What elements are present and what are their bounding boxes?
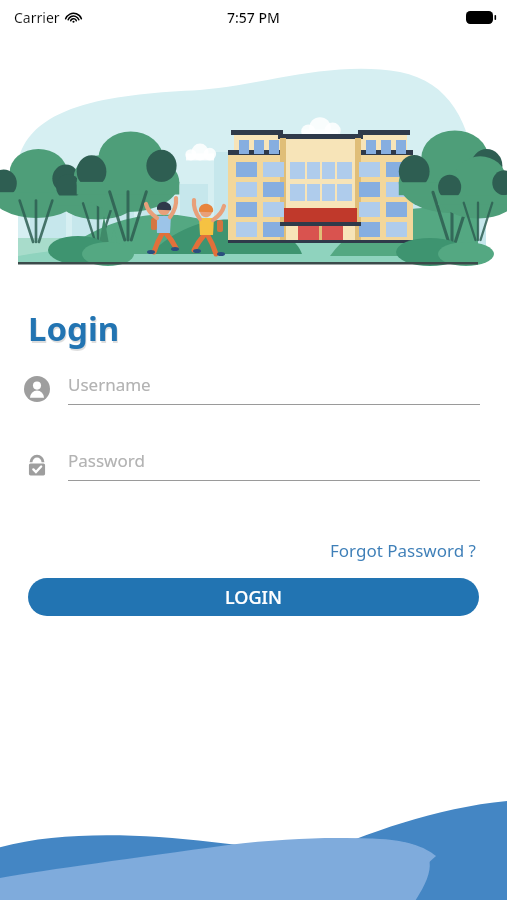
staticText: Forgot Password ? (330, 539, 476, 562)
button[interactable]: Password (24, 449, 480, 481)
staticText: Carrier (14, 8, 60, 27)
staticText: 7:57 PM (227, 8, 280, 27)
staticText: Username (68, 373, 151, 396)
staticText: Password (68, 449, 145, 472)
button[interactable]: Username (24, 373, 480, 405)
staticText: LOGIN (225, 585, 282, 610)
button[interactable]: Forgot Password ? (326, 537, 480, 564)
staticText: Login (28, 306, 120, 351)
staticText: Login (29, 308, 121, 353)
button[interactable]: LOGIN (28, 578, 479, 616)
